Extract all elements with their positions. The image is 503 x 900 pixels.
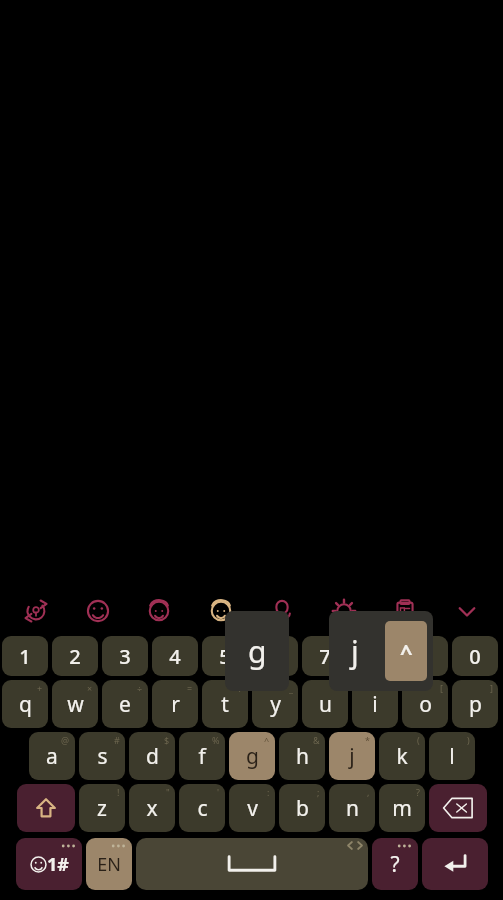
staticText: ( xyxy=(417,734,420,746)
staticText: " xyxy=(166,786,170,798)
button[interactable] xyxy=(136,838,368,890)
button[interactable]: 0 xyxy=(452,636,498,676)
staticText: % xyxy=(212,734,220,746)
staticText: t xyxy=(221,690,229,719)
staticText: j xyxy=(351,631,359,672)
staticText: o xyxy=(419,690,432,719)
staticText: 4 xyxy=(169,643,181,670)
button[interactable]: z xyxy=(79,784,125,832)
staticText: = xyxy=(187,682,193,694)
staticText: $ xyxy=(164,734,170,746)
staticText: : xyxy=(267,786,270,798)
button[interactable]: d xyxy=(129,732,175,780)
staticText: ÷ xyxy=(137,682,143,694)
button[interactable]: Hide keyboard xyxy=(442,589,492,633)
button[interactable]: p xyxy=(452,680,498,728)
button[interactable]: 8 xyxy=(352,636,398,676)
staticText: x xyxy=(146,794,158,823)
staticText: × xyxy=(87,682,93,694)
button[interactable]: u xyxy=(302,680,348,728)
button[interactable]: n xyxy=(329,784,375,832)
staticText: d xyxy=(146,742,159,771)
button[interactable] xyxy=(17,784,75,832)
staticText: m xyxy=(392,794,412,823)
staticText: f xyxy=(198,742,206,771)
button[interactable]: w xyxy=(52,680,98,728)
staticText: n xyxy=(346,794,359,823)
button[interactable]: 4 xyxy=(152,636,198,676)
button[interactable]: b xyxy=(279,784,325,832)
button[interactable]: l xyxy=(429,732,475,780)
staticText: a xyxy=(46,742,58,771)
staticText: ^ xyxy=(400,636,413,666)
button[interactable]: 2 xyxy=(52,636,98,676)
staticText: ^ xyxy=(264,734,270,746)
staticText: ? xyxy=(390,850,400,879)
staticText: b xyxy=(296,794,309,823)
button[interactable]: s xyxy=(79,732,125,780)
button[interactable]: q xyxy=(2,680,48,728)
button[interactable]: 1 xyxy=(2,636,48,676)
button[interactable]: Emoji xyxy=(73,589,123,633)
button[interactable]: 5 xyxy=(202,636,248,676)
button[interactable]: t xyxy=(202,680,248,728)
button[interactable]: j xyxy=(329,732,375,780)
staticText: 0 xyxy=(469,643,481,670)
button[interactable]: Voice input xyxy=(257,589,307,633)
staticText: 1# xyxy=(47,852,69,877)
button[interactable]: k xyxy=(379,732,425,780)
button[interactable]: e xyxy=(102,680,148,728)
staticText: k xyxy=(396,742,408,771)
button[interactable]: 6 xyxy=(252,636,298,676)
staticText: [ xyxy=(440,682,443,694)
button[interactable]: v xyxy=(229,784,275,832)
button[interactable]: r xyxy=(152,680,198,728)
button[interactable]: o xyxy=(402,680,448,728)
button[interactable]: x xyxy=(129,784,175,832)
button[interactable]: Stickers xyxy=(134,589,184,633)
button[interactable]: i xyxy=(352,680,398,728)
staticText: ) xyxy=(467,734,470,746)
button[interactable]: EN xyxy=(86,838,132,890)
staticText: / xyxy=(239,682,243,694)
button[interactable]: a xyxy=(29,732,75,780)
staticText: y xyxy=(270,690,281,719)
button[interactable]: 3 xyxy=(102,636,148,676)
staticText: u xyxy=(319,690,332,719)
button[interactable]: Clipboard xyxy=(380,589,430,633)
staticText: g xyxy=(246,742,259,771)
button[interactable]: Settings xyxy=(319,589,369,633)
staticText: 5 xyxy=(219,643,231,670)
button[interactable]: ^ xyxy=(385,621,427,681)
button[interactable]: AR Emoji xyxy=(196,589,246,633)
staticText: ' xyxy=(217,786,220,798)
button[interactable]: ? xyxy=(372,838,418,890)
button[interactable]: 7 xyxy=(302,636,348,676)
staticText: 1 xyxy=(19,643,31,670)
staticText: # xyxy=(114,734,120,746)
staticText: i xyxy=(372,690,378,719)
button[interactable]: y xyxy=(252,680,298,728)
staticText: j xyxy=(349,742,355,771)
staticText: & xyxy=(313,734,320,746)
staticText: c xyxy=(197,794,208,823)
button[interactable]: f xyxy=(179,732,225,780)
button[interactable]: g xyxy=(229,732,275,780)
staticText: , xyxy=(367,786,370,798)
button[interactable]: c xyxy=(179,784,225,832)
staticText: ! xyxy=(117,786,120,798)
button[interactable]: 1# xyxy=(16,838,82,890)
staticText: z xyxy=(97,794,107,823)
staticText: 7 xyxy=(319,643,331,670)
button[interactable]: h xyxy=(279,732,325,780)
button[interactable] xyxy=(429,784,487,832)
staticText: + xyxy=(37,682,43,694)
button[interactable]: m xyxy=(379,784,425,832)
staticText: * xyxy=(365,734,370,746)
staticText: > xyxy=(387,682,393,694)
button[interactable]: Translate xyxy=(11,589,61,633)
staticText: p xyxy=(469,690,482,719)
button[interactable]: 9 xyxy=(402,636,448,676)
button[interactable] xyxy=(422,838,488,890)
